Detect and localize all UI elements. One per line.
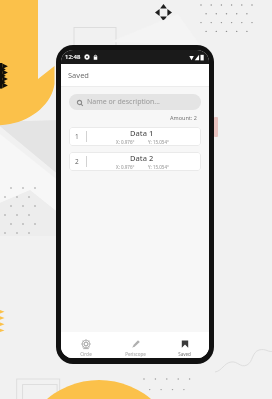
- button[interactable]: Circle: [61, 332, 111, 358]
- staticText: 2: [75, 157, 79, 166]
- staticText: Saved: [68, 70, 89, 80]
- staticText: 1: [75, 132, 79, 141]
- button[interactable]: 1: [69, 127, 201, 146]
- button[interactable]: Saved: [160, 332, 209, 358]
- button[interactable]: 2: [69, 152, 201, 171]
- staticText: Data 2: [130, 153, 154, 163]
- staticText: X: 0.976°: [116, 164, 135, 170]
- staticText: 12:48: [65, 53, 81, 61]
- staticText: Y: 15.054°: [148, 139, 169, 145]
- staticText: Circle: [80, 351, 92, 357]
- button[interactable]: Name or description...: [69, 94, 201, 110]
- staticText: X: 0.976°: [116, 139, 135, 145]
- staticText: Saved: [178, 351, 191, 357]
- button[interactable]: Periscope: [111, 332, 160, 358]
- staticText: Y: 15.054°: [148, 164, 169, 170]
- staticText: Data 1: [130, 128, 154, 138]
- staticText: Periscope: [125, 351, 146, 357]
- staticText: Name or description...: [87, 97, 160, 107]
- staticText: Amount: 2: [170, 114, 197, 121]
